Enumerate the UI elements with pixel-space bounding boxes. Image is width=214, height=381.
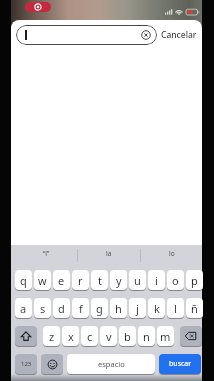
button[interactable]: e <box>53 270 70 290</box>
button[interactable]: r <box>72 270 89 290</box>
button[interactable]: f <box>72 298 89 318</box>
staticText: w <box>38 273 47 288</box>
button[interactable]: i <box>148 270 165 290</box>
staticText: f <box>79 301 83 316</box>
button[interactable]: o <box>167 270 184 290</box>
staticText: x <box>68 329 74 344</box>
staticText: la <box>106 249 112 258</box>
staticText: z <box>49 329 55 344</box>
button[interactable]: w <box>34 270 51 290</box>
staticText: j <box>136 301 139 316</box>
staticText: n <box>143 329 150 344</box>
button[interactable]: a <box>15 298 32 318</box>
button[interactable]: u <box>129 270 146 290</box>
staticText: c <box>87 329 93 344</box>
staticText: o <box>172 273 179 288</box>
button[interactable] <box>15 326 37 346</box>
button[interactable] <box>25 2 51 12</box>
button[interactable]: la <box>77 245 140 262</box>
staticText: b <box>124 329 131 344</box>
button[interactable]: lo <box>140 245 203 262</box>
staticText: i <box>155 273 158 288</box>
button[interactable]: v <box>100 326 117 346</box>
staticText: espacio <box>98 359 125 369</box>
button[interactable]: ñ <box>186 298 203 318</box>
staticText: r <box>78 273 83 288</box>
staticText: 123 <box>21 360 32 368</box>
button[interactable]: t <box>91 270 108 290</box>
staticText: e <box>58 273 65 288</box>
button[interactable]: c <box>81 326 98 346</box>
staticText: lo <box>169 249 175 258</box>
button[interactable]: Cancelar <box>157 27 201 43</box>
staticText: “l” <box>43 249 50 258</box>
staticText: ñ <box>191 301 198 316</box>
button[interactable]: x <box>62 326 79 346</box>
button[interactable]: s <box>34 298 51 318</box>
staticText: d <box>58 301 65 316</box>
button[interactable] <box>16 25 157 45</box>
button[interactable] <box>180 326 202 346</box>
button[interactable]: k <box>148 298 165 318</box>
staticText: t <box>98 273 102 288</box>
button[interactable]: p <box>186 270 203 290</box>
button[interactable]: q <box>15 270 32 290</box>
staticText: h <box>115 301 122 316</box>
button[interactable]: 123 <box>15 354 37 374</box>
button[interactable]: l <box>167 298 184 318</box>
staticText: m <box>160 329 171 344</box>
staticText: g <box>96 301 103 316</box>
button[interactable]: h <box>110 298 127 318</box>
button[interactable]: n <box>138 326 155 346</box>
staticText: Cancelar <box>161 29 197 41</box>
button[interactable]: espacio <box>67 354 155 374</box>
staticText: s <box>40 301 46 316</box>
staticText: q <box>20 273 27 288</box>
staticText: y <box>116 273 122 288</box>
staticText: a <box>20 301 27 316</box>
button[interactable]: z <box>43 326 60 346</box>
button[interactable]: “l” <box>15 245 78 262</box>
staticText: u <box>134 273 141 288</box>
staticText: k <box>154 301 160 316</box>
button[interactable] <box>41 354 63 374</box>
button[interactable]: d <box>53 298 70 318</box>
button[interactable]: buscar <box>159 354 201 374</box>
staticText: buscar <box>169 359 192 369</box>
staticText: p <box>191 273 198 288</box>
button[interactable]: y <box>110 270 127 290</box>
button[interactable]: g <box>91 298 108 318</box>
button[interactable]: m <box>157 326 174 346</box>
button[interactable]: b <box>119 326 136 346</box>
button[interactable]: j <box>129 298 146 318</box>
staticText: l <box>174 301 177 316</box>
staticText: v <box>106 329 112 344</box>
